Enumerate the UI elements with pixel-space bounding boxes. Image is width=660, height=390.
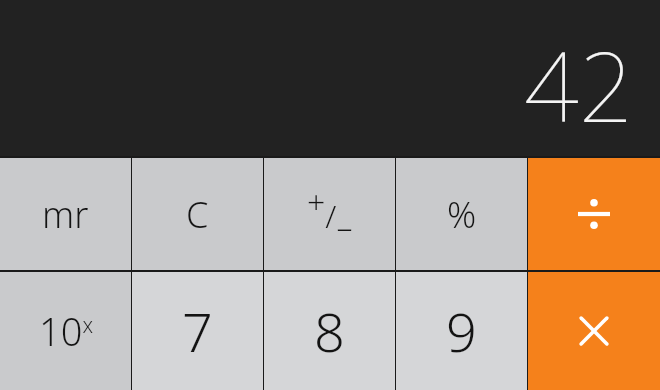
staticText: 42 (524, 19, 634, 150)
staticText: % (447, 190, 477, 239)
button[interactable]: 9 (396, 272, 527, 390)
staticText: 7 (182, 294, 213, 368)
staticText: mr (42, 190, 89, 239)
staticText: 9 (446, 294, 477, 368)
button[interactable]: % (396, 158, 527, 270)
staticText: C (186, 190, 209, 239)
button[interactable]: 7 (132, 272, 263, 390)
button[interactable]: C (132, 158, 263, 270)
button[interactable]: Multiply (528, 272, 660, 390)
button[interactable]: Ten to the power x (0, 272, 131, 390)
button[interactable]: Plus minus (264, 158, 395, 270)
button[interactable]: 8 (264, 272, 395, 390)
button[interactable]: mr (0, 158, 131, 270)
staticText: 8 (314, 294, 345, 368)
staticText: +/– (307, 180, 353, 248)
staticText: 10x (39, 305, 93, 357)
button[interactable]: Divide (528, 158, 660, 270)
